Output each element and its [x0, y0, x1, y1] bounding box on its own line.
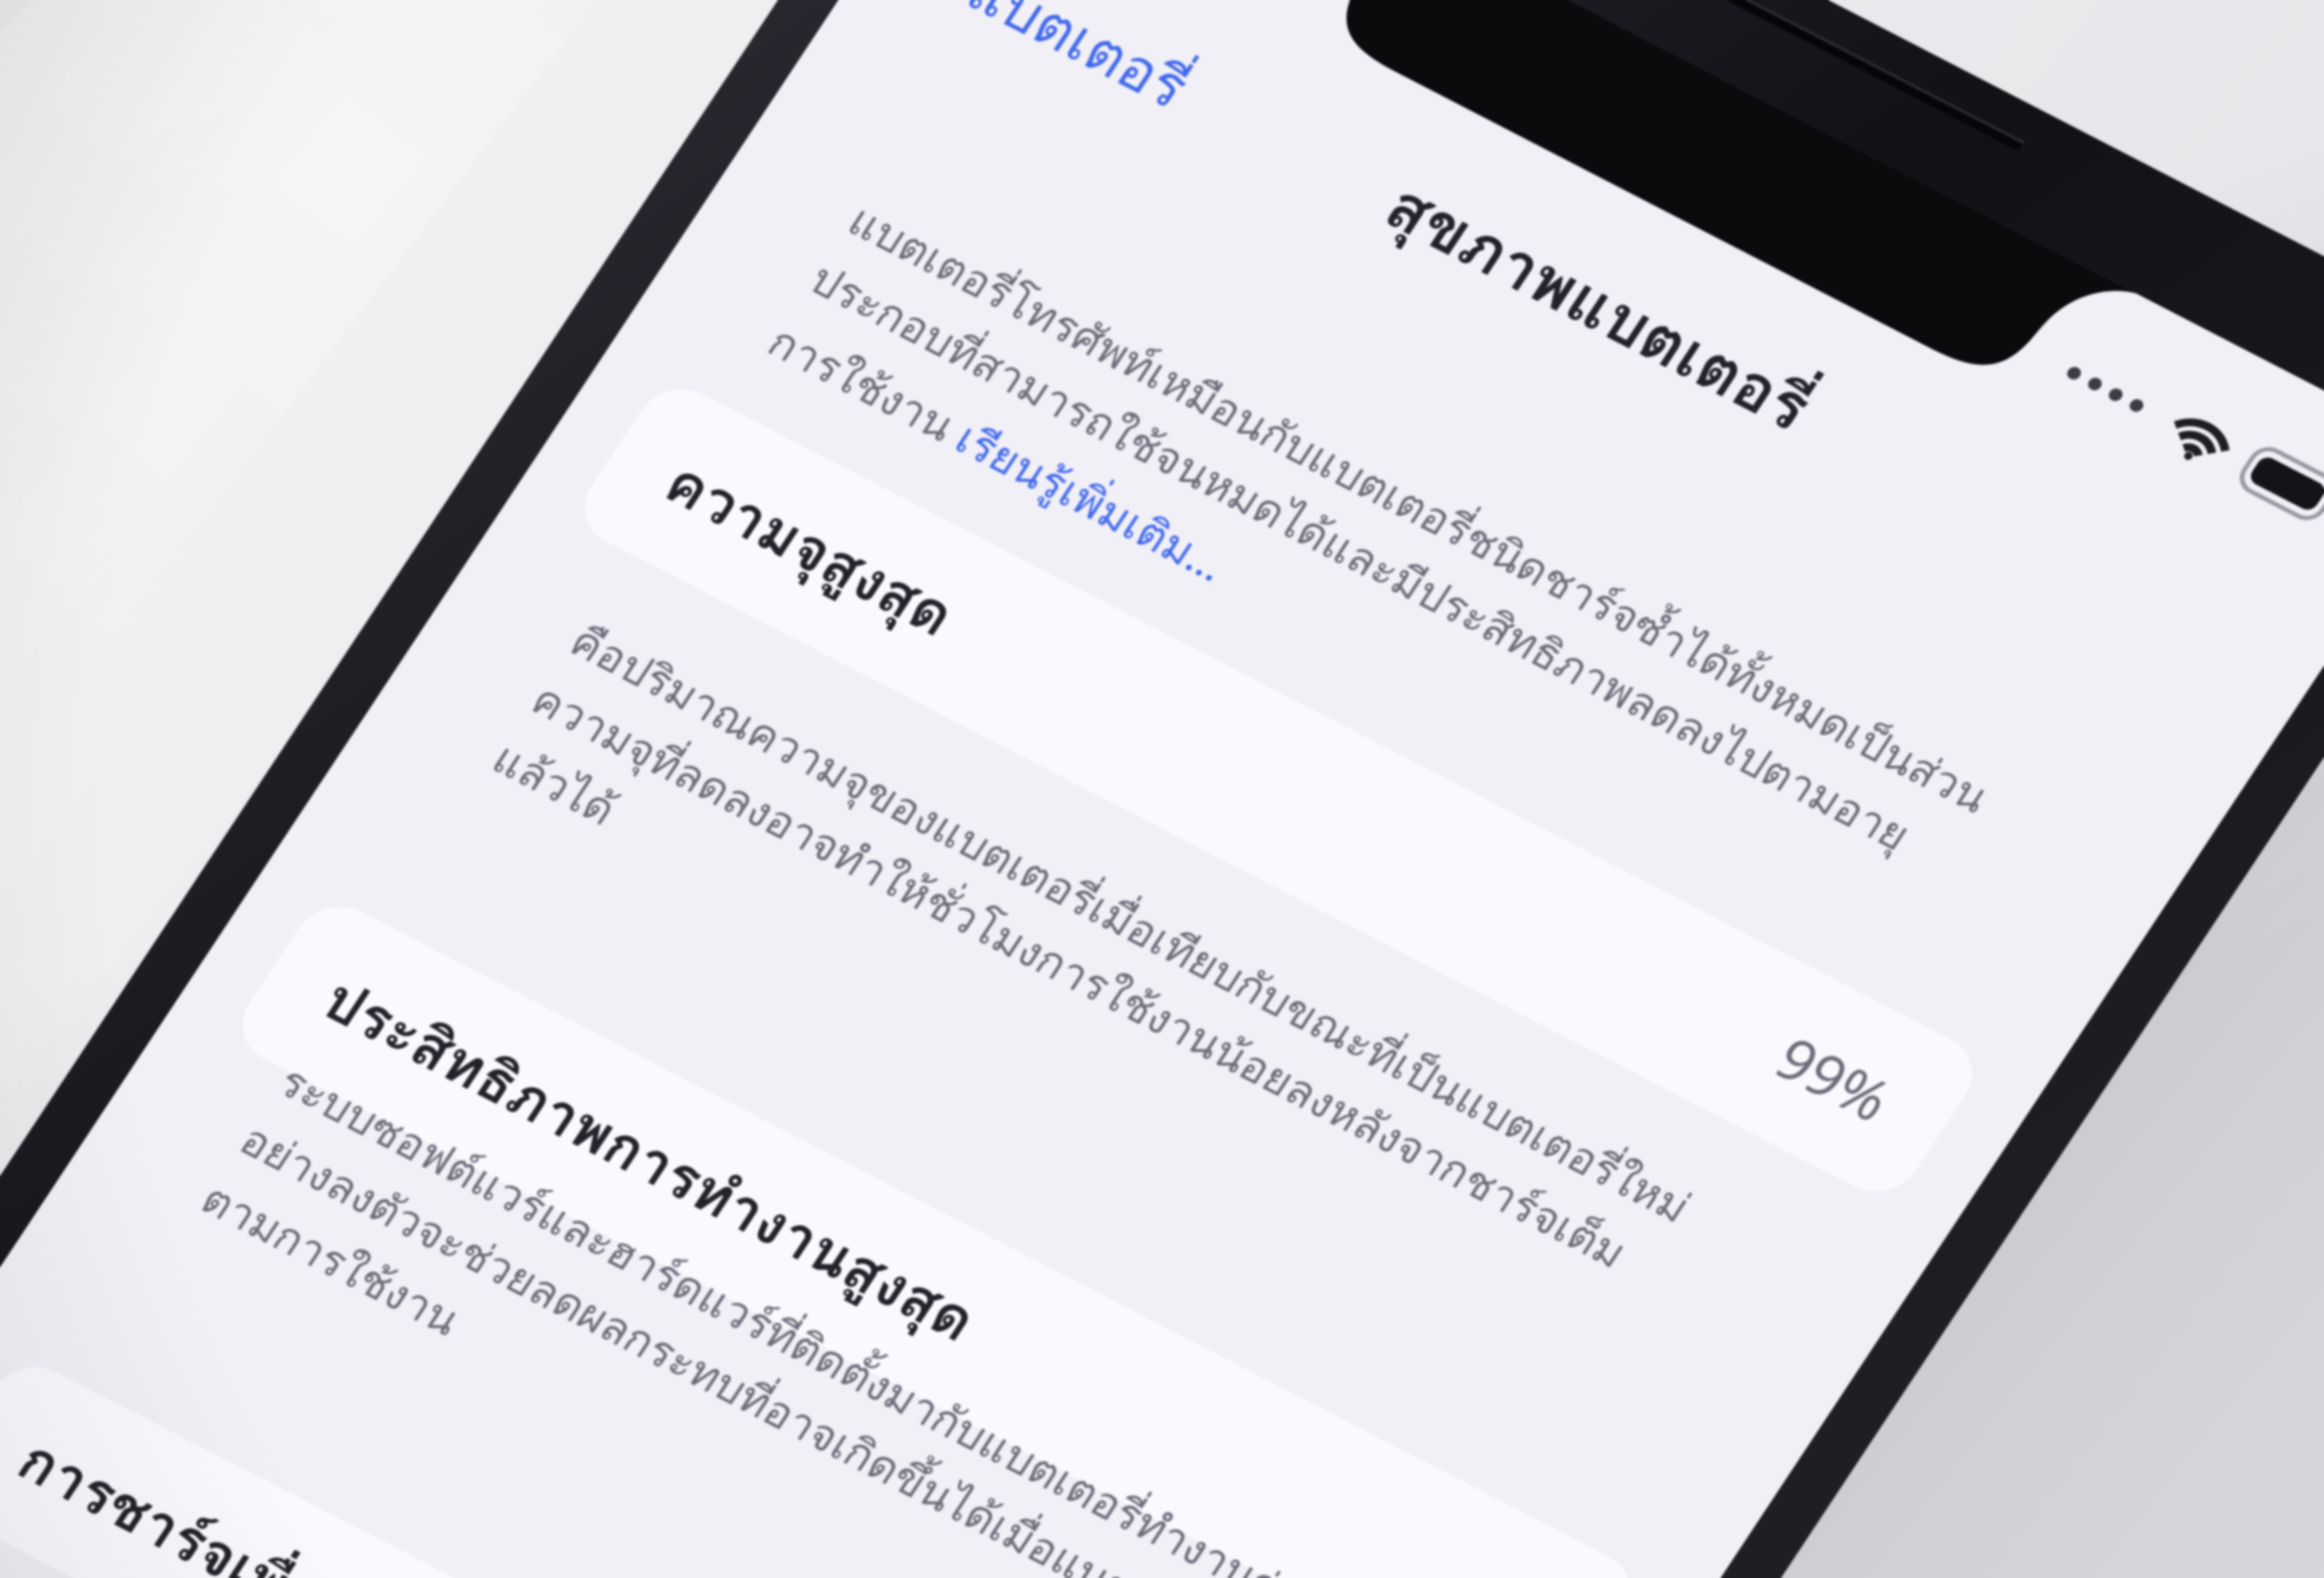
button[interactable]: ประสิทธิภาพการทำงานสูงสุด: [189, 536, 1684, 1578]
staticText: ประสิทธิภาพการทำงานสูงสุด: [284, 783, 1016, 1537]
other: Wi-Fi signal: [2149, 389, 2251, 488]
staticText: ระบบซอฟต์แวร์และฮาร์ดแวร์ที่ติดตั้งมากับ…: [142, 742, 1485, 1578]
staticText: 99%: [1744, 991, 1924, 1165]
other: Back: [889, 0, 989, 14]
button[interactable]: ความจุสูงสุด: [531, 19, 2026, 1562]
staticText: แบตเตอรี่: [928, 0, 1228, 188]
staticText: แบตเตอรี่โทรศัพท์เหมือนกับแบตเตอรี่ชนิดช…: [709, 0, 2055, 1260]
button[interactable]: การชาร์จเพื่อสุขภาพแบตเตอรี่: [0, 997, 1379, 1578]
button[interactable]: Back: [796, 0, 1283, 271]
staticText: ความจุสูงสุด: [626, 363, 995, 734]
staticText: สุขภาพแบตเตอรี่: [1343, 46, 1855, 567]
staticText: iPhone จะเรียนรู้จากการชาร์จประจำวันของค…: [0, 1263, 1104, 1578]
other: Battery level: [2225, 420, 2324, 552]
staticText: การชาร์จเพื่อสุขภาพแบตเตอรี่: [0, 1238, 733, 1578]
staticText: คือปริมาณความจุของแบตเตอรี่เมื่อเทียบกับ…: [434, 302, 1776, 1578]
